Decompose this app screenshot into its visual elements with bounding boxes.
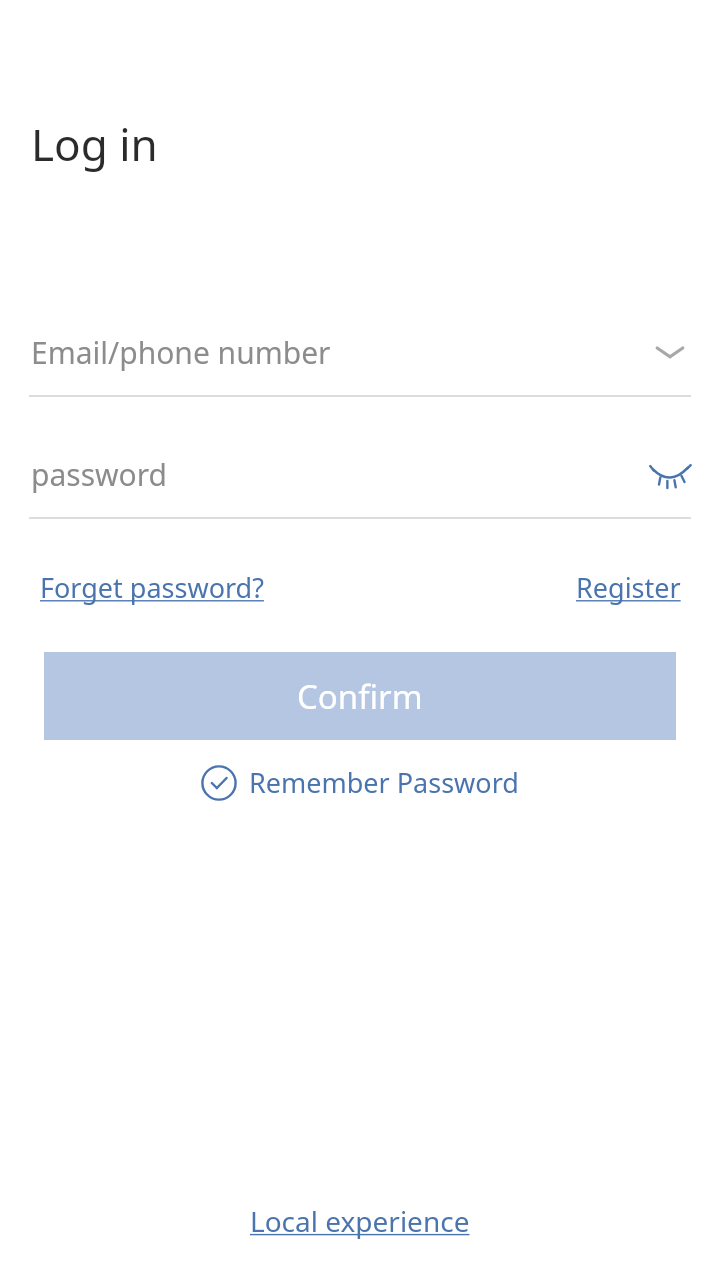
button[interactable]: Remember Password [195,758,525,807]
staticText: Register [576,569,681,606]
button[interactable]: Register [576,565,681,610]
button[interactable]: Local experience [242,1198,478,1244]
staticText: Log in [31,114,158,174]
staticText: Confirm [297,674,423,719]
button[interactable]: Email/phone number [0,308,720,396]
staticText: Remember Password [249,764,519,801]
button[interactable]: Confirm [44,652,676,740]
button[interactable]: password [0,430,720,518]
staticText: Forget password? [40,569,264,606]
button[interactable]: Forget password? [40,565,264,610]
button[interactable]: Show password [646,450,694,498]
staticText: Email/phone number [31,332,331,373]
button[interactable]: Show account list [646,328,694,376]
staticText: Local experience [250,1202,470,1240]
staticText: password [31,454,167,495]
